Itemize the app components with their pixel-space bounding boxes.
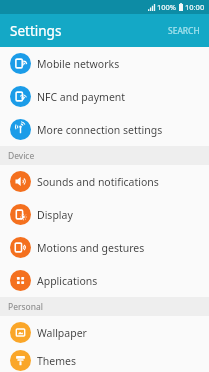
staticText: Themes — [37, 354, 77, 368]
staticText: Display — [37, 208, 73, 222]
button[interactable]: Sounds and notifications — [0, 165, 209, 198]
staticText: Personal — [8, 301, 43, 313]
button[interactable]: More connection settings — [0, 113, 209, 146]
staticText: Settings — [10, 22, 62, 40]
staticText: Motions and gestures — [37, 241, 145, 255]
staticText: 10:00 — [185, 2, 205, 12]
button[interactable]: Wallpaper — [0, 316, 209, 349]
button[interactable]: Themes — [0, 349, 209, 372]
staticText: Applications — [37, 274, 98, 288]
button[interactable]: Display — [0, 198, 209, 231]
button[interactable]: Mobile networks — [0, 47, 209, 80]
staticText: Device — [8, 150, 35, 162]
staticText: More connection settings — [37, 123, 163, 137]
staticText: Sounds and notifications — [37, 175, 159, 189]
button[interactable]: Applications — [0, 264, 209, 297]
staticText: Wallpaper — [37, 326, 87, 340]
button[interactable]: NFC and payment — [0, 80, 209, 113]
staticText: Mobile networks — [37, 57, 120, 71]
staticText: NFC and payment — [37, 90, 126, 104]
button[interactable]: Motions and gestures — [0, 231, 209, 264]
staticText: 100% — [157, 2, 177, 12]
button[interactable]: SEARCH — [159, 16, 209, 46]
staticText: SEARCH — [168, 25, 200, 37]
